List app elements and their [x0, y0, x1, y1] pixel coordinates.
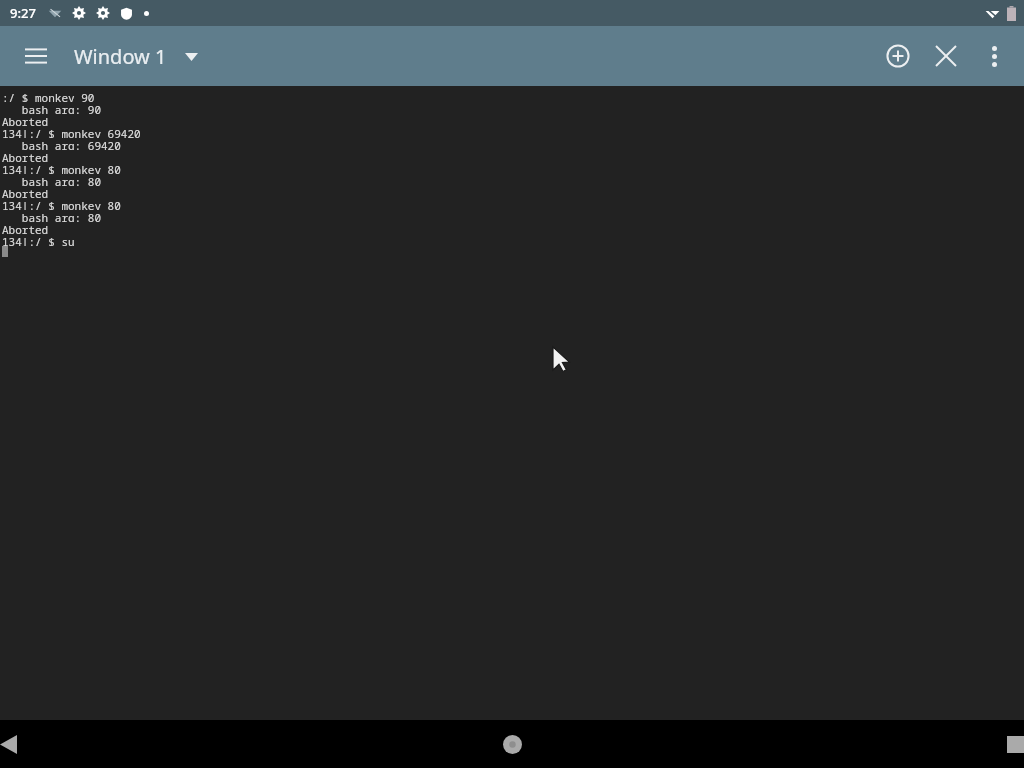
button[interactable]: New window: [874, 32, 922, 80]
staticText: bash arg: 80: [2, 210, 101, 222]
staticText: Aborted: [2, 186, 49, 198]
staticText: Aborted: [2, 222, 49, 234]
staticText: 134|:/ $ su: [2, 234, 75, 246]
staticText: Window 1: [74, 43, 167, 70]
button[interactable]: :/ $ monkey 90: [0, 86, 1024, 720]
button[interactable]: Home: [342, 720, 683, 768]
staticText: :/ $ monkey 90: [2, 90, 95, 102]
staticText: Aborted: [2, 150, 49, 162]
staticText: bash arg: 80: [2, 174, 101, 186]
staticText: 134|:/ $ monkey 80: [2, 162, 121, 174]
button[interactable]: Back: [0, 720, 342, 768]
button[interactable]: More options: [970, 32, 1018, 80]
staticText: bash arg: 69420: [2, 138, 121, 150]
staticText: Aborted: [2, 114, 49, 126]
button[interactable]: Window 1: [74, 43, 198, 70]
staticText: 134|:/ $ monkey 69420: [2, 126, 141, 138]
staticText: 9:27: [10, 4, 36, 22]
staticText: bash arg: 90: [2, 102, 101, 114]
button[interactable]: Close window: [922, 32, 970, 80]
staticText: 134|:/ $ monkey 80: [2, 198, 121, 210]
button[interactable]: Recent apps: [683, 720, 1024, 768]
button[interactable]: Open navigation drawer: [12, 32, 60, 80]
